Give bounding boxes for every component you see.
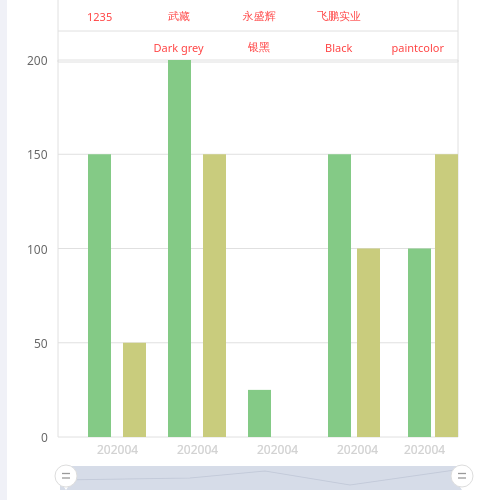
button[interactable]: Bar chart with data zoom — [0, 0, 500, 500]
